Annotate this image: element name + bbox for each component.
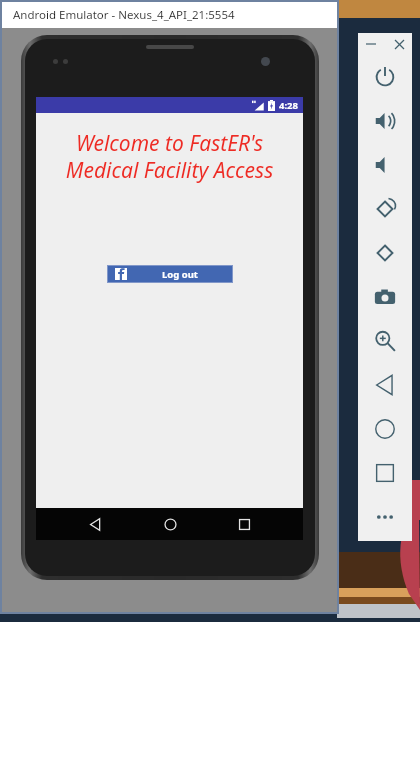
button[interactable]: Minimize bbox=[361, 34, 381, 54]
staticText: Welcome to FastER's Medical Facility Acc… bbox=[48, 129, 291, 184]
button[interactable]: Rotate left bbox=[358, 187, 412, 231]
button[interactable]: Screenshot bbox=[358, 275, 412, 319]
button[interactable]: Recent apps bbox=[228, 508, 260, 540]
button[interactable]: Home bbox=[154, 508, 186, 540]
button[interactable]: Zoom bbox=[358, 319, 412, 363]
staticText: 4:28 bbox=[279, 99, 298, 112]
button[interactable]: Back bbox=[79, 508, 111, 540]
staticText: Log out bbox=[162, 268, 198, 281]
button[interactable]: Home bbox=[358, 407, 412, 451]
button[interactable]: Rotate right bbox=[358, 231, 412, 275]
button[interactable]: Volume up bbox=[358, 99, 412, 143]
staticText: Android Emulator - Nexus_4_API_21:5554 bbox=[13, 7, 235, 23]
button[interactable]: Volume down bbox=[358, 143, 412, 187]
button[interactable]: Overview bbox=[358, 451, 412, 495]
button[interactable]: Close bbox=[389, 34, 409, 54]
button[interactable]: Log out bbox=[108, 266, 232, 282]
button[interactable]: More bbox=[358, 495, 412, 539]
button[interactable]: Back bbox=[358, 363, 412, 407]
button[interactable]: Power bbox=[358, 55, 412, 99]
